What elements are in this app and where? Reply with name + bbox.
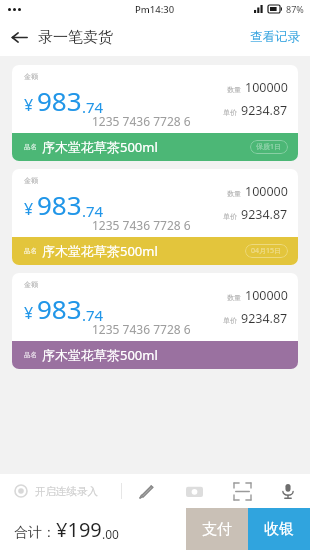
staticText: 1235 7436 7728 6 xyxy=(92,217,191,233)
staticText: 品名 xyxy=(24,247,37,255)
staticText: .74 xyxy=(82,305,104,325)
staticText: 支付 xyxy=(202,520,232,539)
staticText: 保质1日 xyxy=(256,142,282,152)
staticText: 金额 xyxy=(24,176,38,185)
button[interactable]: 查看记录 xyxy=(240,18,310,56)
staticText: 1235 7436 7728 6 xyxy=(92,321,191,337)
staticText: 序木堂花草茶500ml xyxy=(42,138,158,156)
staticText: ¥ xyxy=(24,94,34,116)
staticText: 983 xyxy=(37,187,82,222)
button[interactable]: Edit xyxy=(122,474,170,508)
staticText: 收银 xyxy=(264,520,294,539)
button[interactable]: Scan barcode xyxy=(218,474,266,508)
staticText: 序木堂花草茶500ml xyxy=(42,242,158,260)
staticText: ¥ xyxy=(24,302,34,324)
staticText: 序木堂花草茶500ml xyxy=(42,346,158,364)
staticText: .74 xyxy=(82,97,104,117)
staticText: 87% xyxy=(286,3,304,15)
staticText: 100000 xyxy=(245,287,288,304)
staticText: 查看记录 xyxy=(250,29,300,45)
staticText: 单价 xyxy=(223,108,237,117)
staticText: .00 xyxy=(102,526,119,542)
staticText: 数量 xyxy=(227,85,241,94)
staticText: .74 xyxy=(82,201,104,221)
staticText: 100000 xyxy=(245,183,288,200)
staticText: 开启连续录入 xyxy=(35,485,98,498)
button[interactable]: 金额 xyxy=(12,169,298,265)
staticText: 录一笔卖货 xyxy=(38,28,113,47)
staticText: 9234.87 xyxy=(241,102,288,119)
button[interactable]: Voice input xyxy=(266,474,310,508)
button[interactable]: 04月15日 xyxy=(245,244,288,258)
staticText: 金额 xyxy=(24,72,38,81)
button[interactable]: 金额 xyxy=(12,273,298,369)
staticText: 合计： xyxy=(14,524,56,542)
staticText: 1235 7436 7728 6 xyxy=(92,113,191,129)
staticText: 品名 xyxy=(24,351,37,359)
staticText: 金额 xyxy=(24,280,38,289)
staticText: ¥ xyxy=(24,198,34,220)
button[interactable]: 收银 xyxy=(248,508,310,550)
button[interactable]: 开启连续录入 xyxy=(0,474,121,508)
staticText: 983 xyxy=(37,83,82,118)
staticText: 数量 xyxy=(227,293,241,302)
staticText: 9234.87 xyxy=(241,206,288,223)
staticText: 单价 xyxy=(223,316,237,325)
staticText: 单价 xyxy=(223,212,237,221)
staticText: ¥199 xyxy=(56,516,102,543)
staticText: Pm14:30 xyxy=(135,3,175,16)
button[interactable]: 支付 xyxy=(186,508,248,550)
button[interactable]: 保质1日 xyxy=(250,140,288,154)
staticText: 100000 xyxy=(245,79,288,96)
staticText: 983 xyxy=(37,291,82,326)
button[interactable]: Back xyxy=(0,18,38,56)
button[interactable]: Camera xyxy=(170,474,218,508)
staticText: 数量 xyxy=(227,189,241,198)
staticText: 品名 xyxy=(24,143,37,151)
staticText: 9234.87 xyxy=(241,310,288,327)
button[interactable]: 金额 xyxy=(12,65,298,161)
staticText: 04月15日 xyxy=(251,246,282,256)
